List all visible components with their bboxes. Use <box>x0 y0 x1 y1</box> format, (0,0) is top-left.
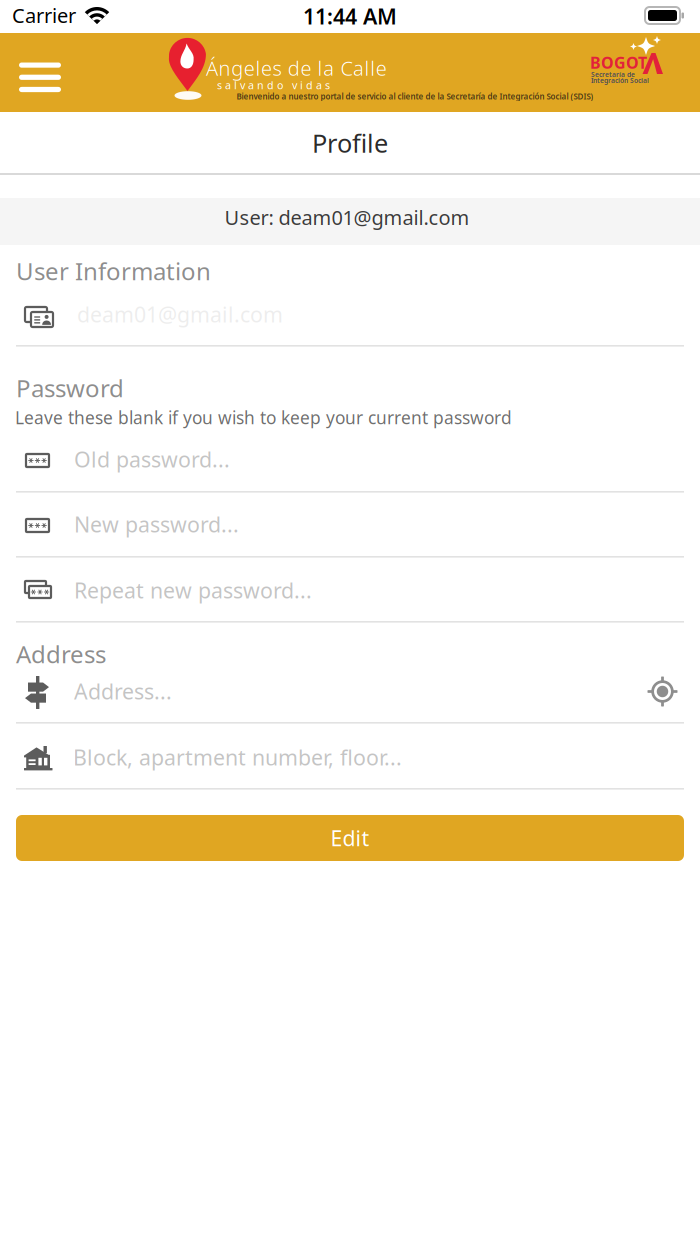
staticText: New password... <box>74 510 239 538</box>
staticText: Address <box>16 638 106 670</box>
button[interactable]: Edit <box>16 815 684 861</box>
staticText: Block, apartment number, floor... <box>73 743 402 771</box>
staticText: deam01@gmail.com <box>77 300 283 328</box>
staticText: Old password... <box>74 445 230 473</box>
staticText: Leave these blank if you wish to keep yo… <box>15 406 512 429</box>
staticText: Carrier <box>12 2 76 29</box>
button[interactable]: Menu <box>0 33 82 112</box>
staticText: Bienvenido a nuestro portal de servicio … <box>236 91 593 102</box>
staticText: User Information <box>16 255 211 287</box>
staticText: Profile <box>312 126 388 160</box>
staticText: 11:44 AM <box>303 2 397 30</box>
staticText: Repeat new password... <box>74 576 312 604</box>
staticText: BOGOT <box>590 52 647 73</box>
staticText: s a l v a n d o v i d a s <box>217 78 330 92</box>
staticText: User: deam01@gmail.com <box>224 204 469 231</box>
staticText: Password <box>16 372 124 404</box>
staticText: Ángeles de la Calle <box>206 55 387 81</box>
staticText: Integración Social <box>591 76 649 85</box>
staticText: Edit <box>330 824 369 852</box>
staticText: Secretaría de <box>591 70 635 79</box>
button[interactable]: Use current location <box>648 677 677 706</box>
staticText: Address... <box>74 677 172 705</box>
